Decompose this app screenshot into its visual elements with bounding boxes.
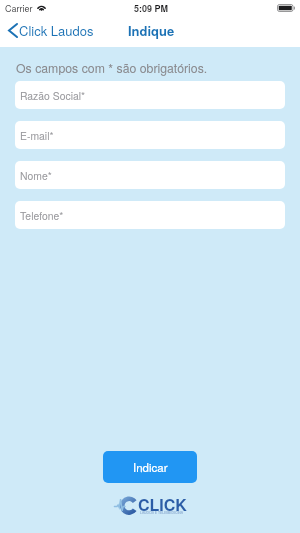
staticText: Carrier [5,2,33,15]
button[interactable]: Indicar [103,451,197,483]
staticText: Os campos com * são obrigatórios. [16,59,208,77]
button[interactable]: Telefone* [15,201,285,229]
button[interactable]: Razão Social* [15,81,285,109]
staticText: Nome* [20,168,52,183]
button[interactable]: Nome* [15,161,285,189]
staticText: LAUDOS E TELEMEDICINA [140,510,184,515]
button[interactable]: E-mail* [15,121,285,149]
staticText: Telefone* [20,208,64,223]
staticText: Razão Social* [20,88,86,103]
staticText: Indicar [133,459,168,475]
other: Back [8,23,18,38]
staticText: CLICK [138,493,187,516]
staticText: Indique [128,21,175,40]
staticText: E-mail* [20,128,54,143]
staticText: 5:09 PM [134,2,169,15]
button[interactable]: Back [0,18,100,43]
staticText: Click Laudos [19,21,94,40]
